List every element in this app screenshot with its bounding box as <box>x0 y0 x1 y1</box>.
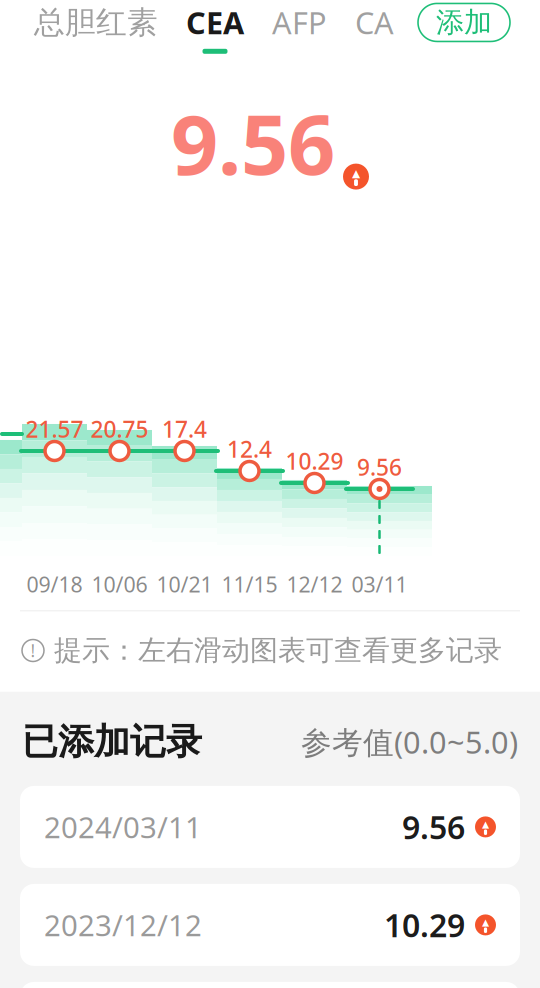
button[interactable]: CEA <box>182 2 248 54</box>
staticText: 10/06 <box>91 570 147 598</box>
staticText: ▲ <box>352 167 360 179</box>
staticText: 9.56 <box>357 452 402 482</box>
staticText: ▲ <box>482 819 489 829</box>
button[interactable]: 总胆红素 <box>30 4 162 52</box>
staticText: 参考值(0.0~5.0) <box>301 721 518 762</box>
button[interactable]: 2023/12/12 <box>20 884 520 966</box>
staticText: 21.57 <box>25 414 83 444</box>
staticText: 9.56 <box>171 88 335 198</box>
staticText: 2023/12/12 <box>44 905 202 944</box>
button[interactable]: 2024/03/11 <box>20 786 520 868</box>
button[interactable]: CA <box>351 2 398 54</box>
staticText: 09/18 <box>26 570 82 598</box>
staticText: 17.4 <box>162 414 207 444</box>
staticText: 03/11 <box>351 570 407 598</box>
staticText: AFP <box>272 2 327 43</box>
button[interactable]: 添加 <box>418 3 510 41</box>
staticText: CA <box>355 2 394 43</box>
staticText: 10.29 <box>384 904 465 946</box>
staticText: CEA <box>186 2 244 43</box>
staticText: ▲ <box>482 917 489 927</box>
staticText: 11/15 <box>221 570 277 598</box>
staticText: 9.56 <box>402 806 465 848</box>
staticText: ! <box>30 639 35 662</box>
staticText: 20.75 <box>90 414 148 444</box>
staticText: 总胆红素 <box>34 4 158 41</box>
staticText: 10.29 <box>285 446 343 476</box>
staticText: 提示：左右滑动图表可查看更多记录 <box>54 633 502 668</box>
staticText: 12.4 <box>227 434 272 464</box>
staticText: 12/12 <box>286 570 342 598</box>
staticText: 添加 <box>436 5 492 40</box>
button[interactable]: AFP <box>268 2 331 54</box>
staticText: 2024/03/11 <box>44 807 202 846</box>
staticText: 已添加记录 <box>22 720 202 764</box>
staticText: 10/21 <box>156 570 212 598</box>
